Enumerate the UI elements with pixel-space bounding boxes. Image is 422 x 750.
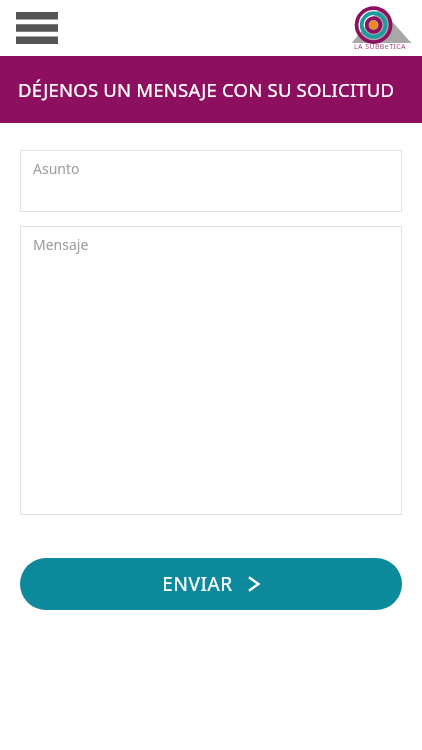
- staticText: LA SUBBeTICA: [354, 42, 406, 52]
- button[interactable]: Mensaje: [20, 226, 402, 515]
- button[interactable]: La Subbetica logo: [348, 3, 412, 53]
- staticText: Asunto: [33, 159, 80, 178]
- staticText: Mensaje: [33, 235, 89, 254]
- staticText: ENVIAR: [162, 571, 233, 597]
- button[interactable]: Asunto: [20, 150, 402, 212]
- button[interactable]: Menu: [14, 9, 60, 47]
- staticText: DÉJENOS UN MENSAJE CON SU SOLICITUD: [18, 77, 395, 102]
- button[interactable]: ENVIAR: [20, 558, 402, 610]
